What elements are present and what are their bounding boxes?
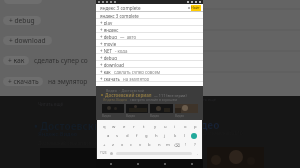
staticText: r [133, 124, 135, 130]
staticText: ?123 [100, 151, 107, 155]
button[interactable]: Key n [156, 142, 162, 148]
staticText: + play [100, 20, 113, 26]
button[interactable]: + как [3, 56, 29, 65]
button[interactable]: Key k [172, 133, 178, 139]
staticText: a [107, 133, 110, 139]
button[interactable]: Keyboard [189, 161, 195, 167]
button[interactable]: Key x [119, 142, 125, 148]
button[interactable]: Key + [101, 142, 107, 148]
staticText: Читать ещё [38, 101, 64, 107]
button[interactable]: Key s [114, 133, 120, 139]
staticText: f [136, 133, 138, 139]
staticText: b [148, 142, 151, 148]
button[interactable]: . [195, 151, 200, 156]
staticText: Видео [126, 114, 136, 118]
staticText: q [103, 124, 106, 130]
button[interactable]: Key c [128, 142, 134, 148]
button[interactable]: + NET [96, 47, 203, 54]
button[interactable]: Key y [152, 124, 158, 130]
button[interactable]: ?123 [99, 151, 107, 155]
button[interactable]: + play [96, 19, 203, 26]
staticText: e [123, 124, 126, 130]
button[interactable]: Key ! [183, 142, 189, 148]
staticText: k [174, 133, 177, 139]
staticText: - кода [115, 48, 128, 54]
button[interactable]: яндекс 3 complete [96, 4, 203, 11]
staticText: n [158, 142, 161, 148]
button[interactable]: Key a [105, 133, 111, 139]
staticText: . [197, 151, 199, 156]
button[interactable]: Search [191, 5, 201, 11]
button[interactable]: Видео [175, 104, 198, 118]
staticText: + debug [100, 34, 117, 40]
button[interactable]: Emoji [110, 152, 113, 155]
staticText: g [145, 133, 148, 139]
button[interactable]: + debug [3, 16, 41, 25]
staticText: v [139, 142, 142, 148]
button[interactable]: + download [3, 36, 52, 45]
staticText: + как [100, 69, 111, 75]
button[interactable]: Recents [162, 161, 168, 167]
button[interactable]: Key m [165, 142, 171, 148]
staticText: + NET [100, 48, 112, 54]
staticText: Яндекс.Видео [103, 97, 128, 102]
button[interactable]: Key e [121, 124, 127, 130]
staticText: l [184, 133, 186, 139]
staticText: ⌫ [174, 143, 180, 148]
button[interactable]: Key r [131, 124, 137, 130]
button[interactable]: Key h [153, 133, 159, 139]
button[interactable]: Key i [172, 124, 178, 130]
button[interactable]: Key ⌫ [174, 142, 180, 148]
button[interactable]: Видео [102, 104, 124, 118]
button[interactable]: + movie [96, 40, 203, 47]
staticText: Достоевский сериал все серии [38, 140, 106, 146]
staticText: Найти [191, 5, 201, 11]
staticText: ! [185, 142, 187, 148]
button[interactable]: + скачать [96, 75, 203, 82]
button[interactable]: Key g [143, 133, 149, 139]
staticText: z [112, 142, 114, 148]
button[interactable]: Key d [124, 133, 130, 139]
button[interactable]: Видео [150, 104, 173, 118]
button[interactable]: Key v [137, 142, 143, 148]
button[interactable]: Voice search [187, 6, 191, 10]
button[interactable]: + debug [96, 33, 203, 40]
button[interactable]: Key ? [192, 142, 198, 148]
staticText: смотреть онлайн в хорошем [130, 97, 178, 102]
button[interactable]: Search key [191, 133, 197, 139]
button[interactable]: + download [96, 61, 203, 68]
button[interactable]: Key u [162, 124, 168, 130]
button[interactable]: Key q [101, 124, 107, 130]
staticText: яндекс 3 complete [100, 13, 139, 19]
staticText: + [103, 142, 106, 148]
button[interactable]: + как [96, 68, 203, 75]
staticText: j [164, 133, 166, 139]
button[interactable]: Home [135, 161, 141, 167]
button[interactable]: Key o [182, 124, 188, 130]
staticText: + movie [100, 41, 117, 47]
staticText: h [155, 133, 158, 139]
staticText: o [184, 124, 187, 130]
button[interactable]: Key t [141, 124, 147, 130]
button[interactable]: Key w [111, 124, 117, 130]
button[interactable]: Key z [110, 142, 116, 148]
button[interactable]: Key j [162, 133, 168, 139]
button[interactable]: Key b [146, 142, 152, 148]
staticText: део [201, 118, 220, 132]
button[interactable]: Видео [126, 104, 148, 118]
staticText: ? [194, 142, 196, 148]
button[interactable]: Back [108, 161, 114, 167]
staticText: p [194, 124, 197, 130]
button[interactable]: + яндекс [96, 26, 203, 33]
button[interactable]: Key f [134, 133, 140, 139]
button[interactable]: + скачать [3, 77, 43, 86]
button[interactable]: Key l [182, 133, 188, 139]
button[interactable]: + debug [96, 54, 203, 61]
button[interactable]: Key p [192, 124, 198, 130]
button[interactable]: яндекс 3 complete [96, 12, 203, 19]
staticText: на эмулятор [123, 76, 150, 82]
